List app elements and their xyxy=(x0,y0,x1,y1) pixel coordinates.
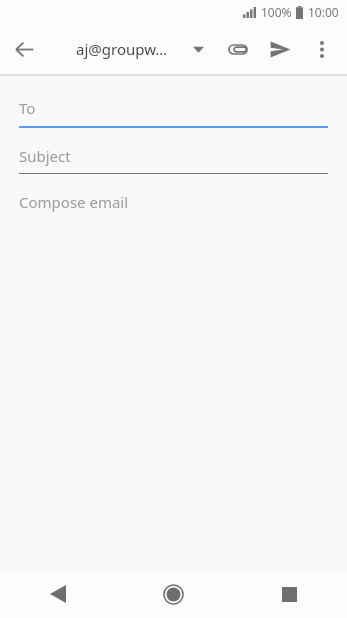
button[interactable]: aj@groupw… xyxy=(76,33,204,65)
staticText: Subject xyxy=(19,146,71,166)
button[interactable]: Back xyxy=(0,570,115,618)
staticText: 100% xyxy=(261,4,292,20)
button[interactable]: Recent apps xyxy=(231,570,347,618)
button[interactable]: More options xyxy=(301,28,343,70)
staticText: 10:00 xyxy=(308,4,339,20)
staticText: aj@groupw… xyxy=(76,39,168,59)
button[interactable]: Compose email xyxy=(0,192,347,512)
button[interactable]: To xyxy=(0,96,347,128)
button[interactable]: Send xyxy=(259,28,301,70)
button[interactable]: Subject xyxy=(0,145,347,174)
staticText: To xyxy=(19,98,36,118)
button[interactable]: Navigate up xyxy=(0,25,48,73)
button[interactable]: Home xyxy=(115,570,231,618)
staticText: Compose email xyxy=(19,192,129,212)
button[interactable]: Attach file xyxy=(217,28,259,70)
